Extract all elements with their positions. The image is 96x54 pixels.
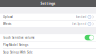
button[interactable]: Stop Strings With Side bbox=[0, 49, 96, 54]
button[interactable]: Play Model Strings bbox=[0, 41, 96, 48]
staticText: Effects bbox=[3, 22, 11, 26]
staticText: Standard bbox=[75, 15, 86, 19]
staticText: Settings bbox=[40, 1, 55, 6]
button[interactable]: Effects bbox=[0, 21, 96, 27]
button[interactable]: Touch Sensitive volume bbox=[0, 34, 96, 41]
button[interactable]: Upload bbox=[0, 14, 96, 20]
staticText: Touch Sensitive volume bbox=[3, 36, 35, 39]
staticText: Play Model Strings bbox=[3, 43, 28, 47]
staticText: Vari-Speed bbox=[71, 22, 86, 26]
staticText: Stop Strings With Side bbox=[3, 51, 33, 54]
staticText: Upload bbox=[3, 15, 13, 19]
